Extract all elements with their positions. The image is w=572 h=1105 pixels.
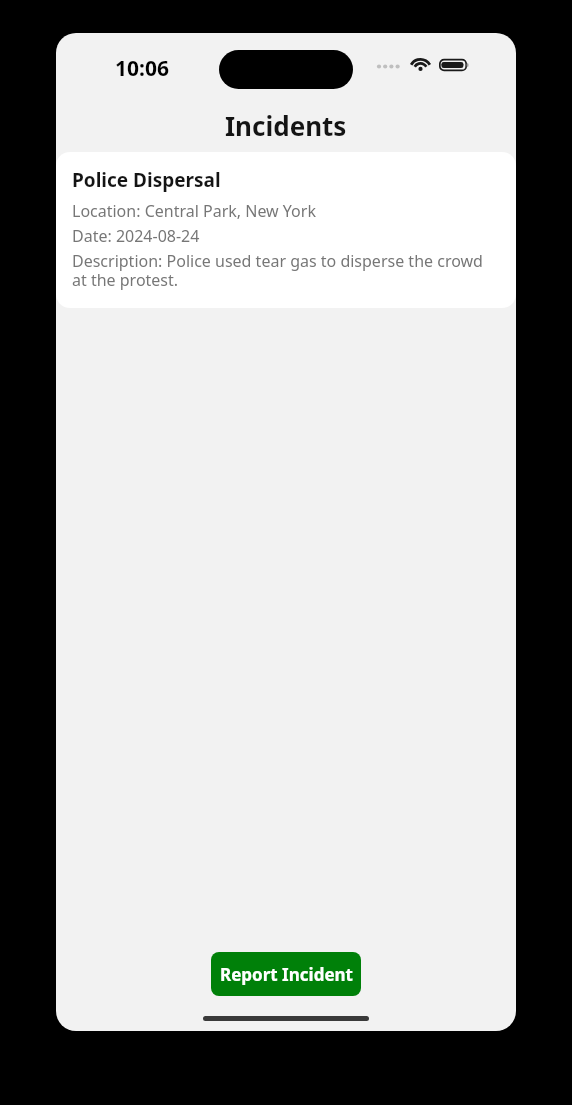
staticText: Date: 2024-08-24 — [72, 225, 200, 247]
button[interactable]: Police Dispersal — [56, 152, 516, 308]
other: Dynamic Island — [219, 50, 353, 89]
staticText: Police Dispersal — [72, 167, 221, 193]
staticText: Location: Central Park, New York — [72, 200, 316, 222]
staticText: Description: Police used tear gas to dis… — [72, 250, 500, 291]
staticText: Incidents — [225, 108, 347, 143]
staticText: 10:06 — [115, 54, 169, 83]
staticText: Report Incident — [220, 963, 353, 986]
button[interactable]: Report Incident — [211, 952, 361, 996]
